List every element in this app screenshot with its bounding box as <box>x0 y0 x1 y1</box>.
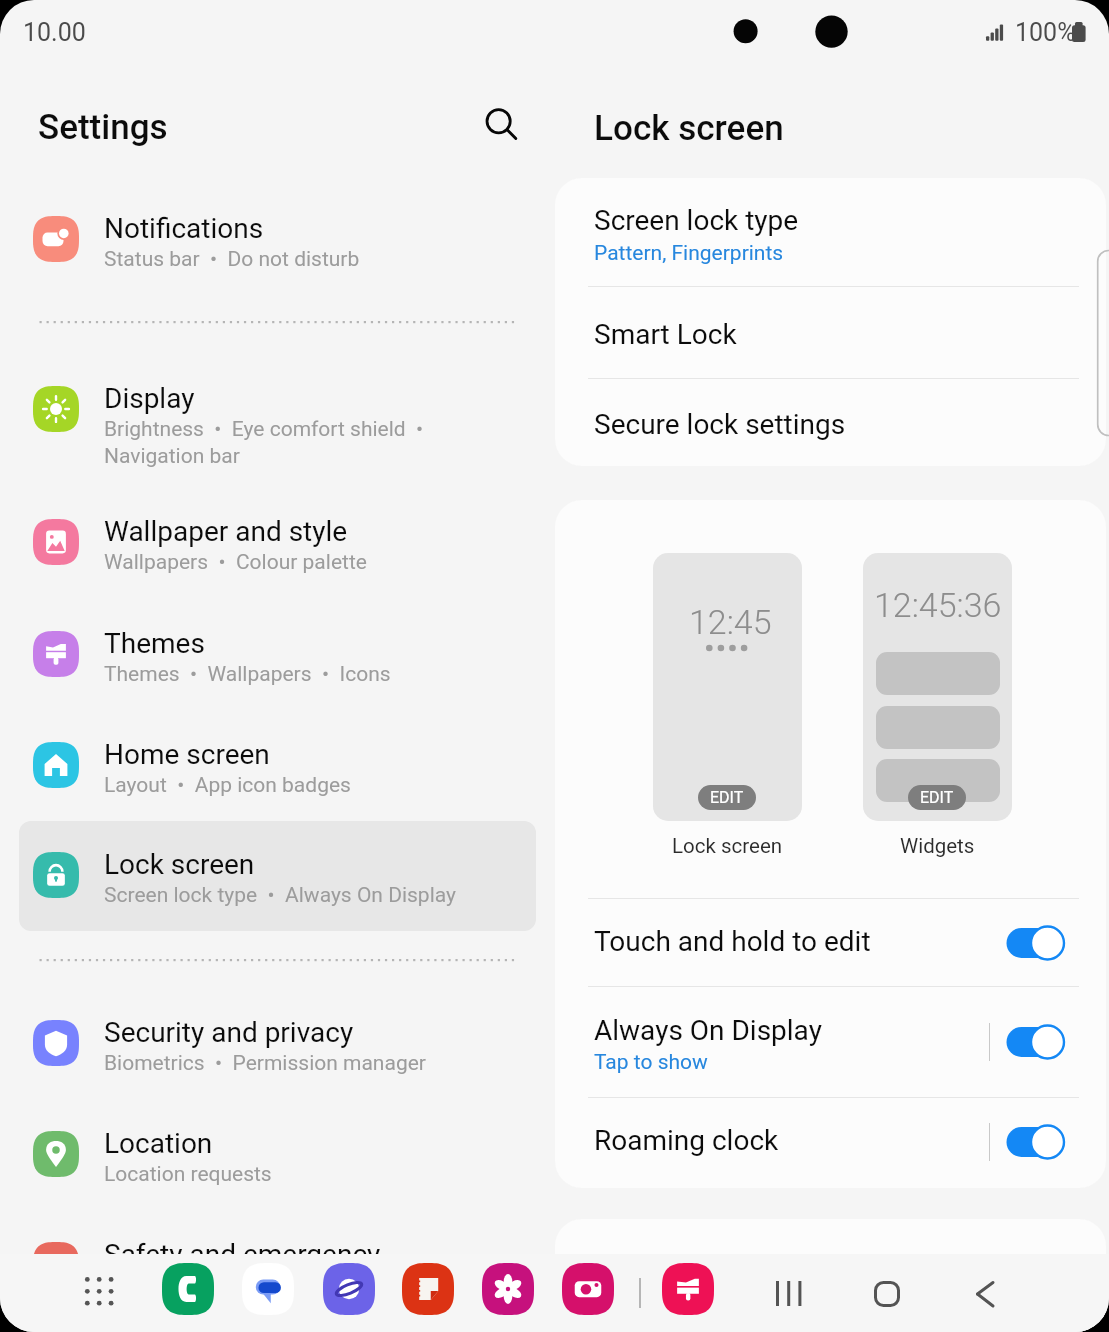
staticText: Biometrics • Permission manager <box>104 1051 426 1076</box>
staticText: Tap to show <box>594 1050 708 1075</box>
staticText: Security and privacy <box>104 1016 354 1049</box>
staticText: Always On Display <box>594 1014 822 1047</box>
staticText: 12:45 <box>689 602 772 642</box>
staticText: Touch and hold to edit <box>594 925 871 958</box>
button[interactable]: Lock screen <box>19 821 536 931</box>
button[interactable]: Safety and emergency <box>19 1211 536 1321</box>
button[interactable]: Home screen <box>19 711 536 821</box>
button[interactable]: Themes <box>19 600 536 710</box>
staticText: Secure lock settings <box>594 408 846 441</box>
button[interactable]: Secure lock settings <box>555 379 1106 466</box>
button[interactable]: EDIT <box>698 785 756 810</box>
button[interactable]: camera <box>562 1263 614 1315</box>
staticText: Layout • App icon badges <box>104 773 351 798</box>
staticText: 100% <box>1015 18 1076 47</box>
button[interactable]: browser <box>323 1263 375 1315</box>
staticText: Roaming clock <box>594 1124 779 1157</box>
staticText: Notifications <box>104 212 264 245</box>
staticText: Brightness • Eye comfort shield • Naviga… <box>104 417 424 469</box>
staticText: Wallpapers • Colour palette <box>104 550 367 575</box>
button[interactable]: Wallpaper and style <box>19 488 536 598</box>
button[interactable]: Search <box>474 97 528 151</box>
staticText: Lock screen <box>672 834 783 858</box>
button[interactable]: Notifications <box>19 185 536 295</box>
button[interactable]: Back <box>962 1267 1016 1321</box>
button[interactable]: Touch and hold to edit <box>1004 923 1068 963</box>
button[interactable]: Roaming clock <box>1004 1122 1068 1162</box>
staticText: Widgets <box>900 834 975 858</box>
button[interactable]: EDIT <box>908 785 966 810</box>
button[interactable]: msg <box>242 1263 294 1315</box>
button[interactable]: Screen lock type <box>555 178 1106 286</box>
button[interactable]: Roaming clock <box>555 1098 1106 1185</box>
staticText: 10.00 <box>23 18 86 47</box>
button[interactable]: Location <box>19 1100 536 1210</box>
staticText: Screen lock type • Always On Display <box>104 883 456 908</box>
button[interactable]: Home <box>860 1267 914 1321</box>
button[interactable]: theme <box>662 1263 714 1315</box>
button[interactable]: Always On Display <box>555 987 1106 1097</box>
staticText: Themes • Wallpapers • Icons <box>104 662 391 687</box>
button[interactable]: phone <box>162 1263 214 1315</box>
button[interactable]: Security and privacy <box>19 989 536 1099</box>
staticText: Display <box>104 382 195 415</box>
staticText: Lock screen <box>594 108 784 149</box>
button[interactable]: 12:45 <box>653 553 802 821</box>
staticText: Lock screen <box>104 848 255 881</box>
staticText: Status bar • Do not disturb <box>104 247 360 272</box>
staticText: Safety and emergency <box>104 1238 381 1271</box>
staticText: EDIT <box>920 788 954 807</box>
button[interactable]: Always On Display <box>1004 1022 1068 1062</box>
button[interactable]: Apps <box>76 1268 124 1316</box>
staticText: Home screen <box>104 738 270 771</box>
staticText: EDIT <box>710 788 744 807</box>
staticText: Settings <box>38 107 168 148</box>
staticText: Themes <box>104 627 205 660</box>
button[interactable]: 12:45:36 <box>863 553 1012 821</box>
button[interactable]: notes <box>402 1263 454 1315</box>
button[interactable]: Touch and hold to edit <box>555 899 1106 986</box>
button[interactable]: gallery <box>482 1263 534 1315</box>
button[interactable]: Smart Lock <box>555 287 1106 379</box>
button[interactable]: Recents <box>762 1267 816 1321</box>
staticText: Location requests <box>104 1162 272 1187</box>
staticText: Location <box>104 1127 213 1160</box>
staticText: Pattern, Fingerprints <box>594 241 784 266</box>
staticText: 12:45:36 <box>874 585 1002 625</box>
button[interactable]: Display <box>19 355 536 465</box>
staticText: Screen lock type <box>594 204 799 237</box>
staticText: Smart Lock <box>594 318 737 351</box>
staticText: Wallpaper and style <box>104 515 348 548</box>
